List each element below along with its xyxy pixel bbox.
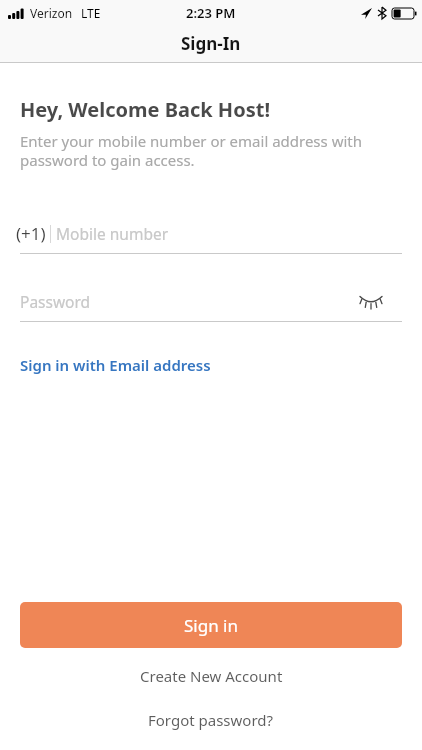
staticText: Enter your mobile number or email addres… <box>20 131 362 170</box>
staticText: LTE <box>81 5 101 21</box>
button[interactable]: Sign in with Email address <box>20 355 211 375</box>
staticText: Hey, Welcome Back Host! <box>20 96 271 123</box>
staticText: Verizon <box>30 5 73 21</box>
staticText: Mobile number <box>56 223 169 244</box>
staticText: Sign in <box>184 614 238 637</box>
button[interactable]: Forgot password? <box>148 710 274 730</box>
staticText: Forgot password? <box>148 710 274 730</box>
staticText: Sign-In <box>181 32 241 55</box>
button[interactable]: Create New Account <box>140 666 283 686</box>
staticText: Password <box>20 291 91 312</box>
staticText: Sign in with Email address <box>20 355 211 375</box>
staticText: (+1) <box>16 222 46 245</box>
staticText: Create New Account <box>140 666 283 686</box>
button[interactable]: Password <box>20 291 402 322</box>
button[interactable]: (+1) <box>20 222 402 254</box>
staticText: 2:23 PM <box>186 4 236 22</box>
button[interactable]: Sign in <box>20 602 402 648</box>
